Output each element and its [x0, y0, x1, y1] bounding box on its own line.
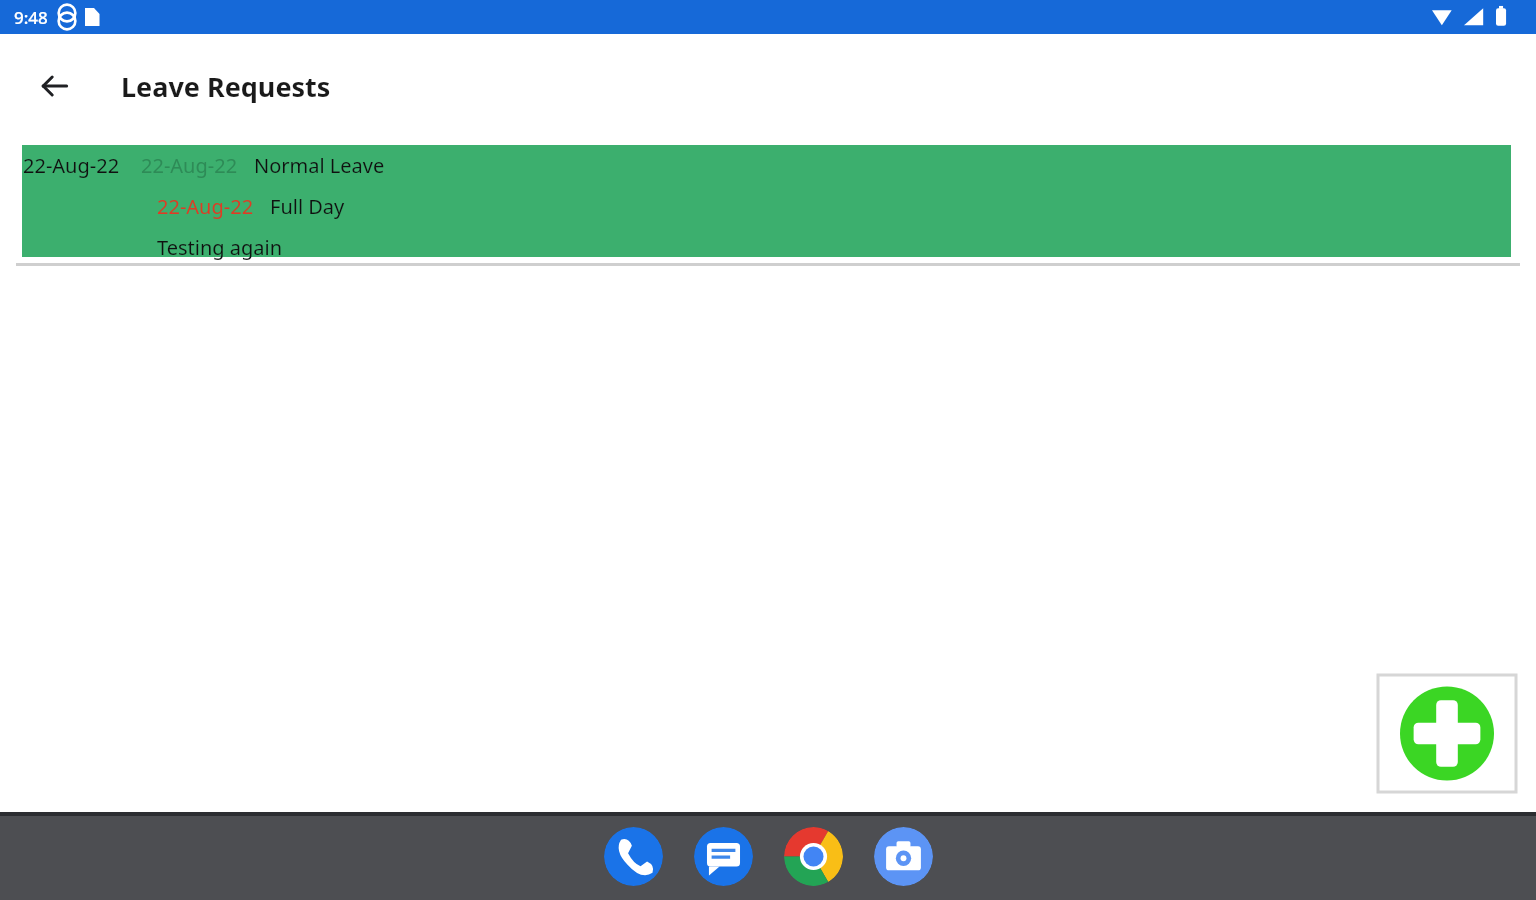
staticText: Full Day [270, 193, 345, 220]
button[interactable]: Messages [694, 827, 753, 886]
staticText: Leave Requests [121, 68, 331, 105]
button[interactable]: Chrome [784, 827, 843, 886]
button[interactable]: Back [28, 60, 80, 112]
staticText: 9:48 [14, 6, 48, 29]
staticText: Testing again [157, 234, 283, 261]
button[interactable]: Add leave request [1378, 675, 1516, 792]
button[interactable]: Phone [604, 827, 663, 886]
staticText: Normal Leave [254, 152, 385, 179]
button[interactable]: Camera [874, 827, 933, 886]
staticText: 22-Aug-22 [141, 152, 238, 179]
staticText: 22-Aug-22 [23, 152, 120, 179]
staticText: 22-Aug-22 [157, 193, 254, 220]
button[interactable]: 22-Aug-22 [22, 145, 1511, 257]
